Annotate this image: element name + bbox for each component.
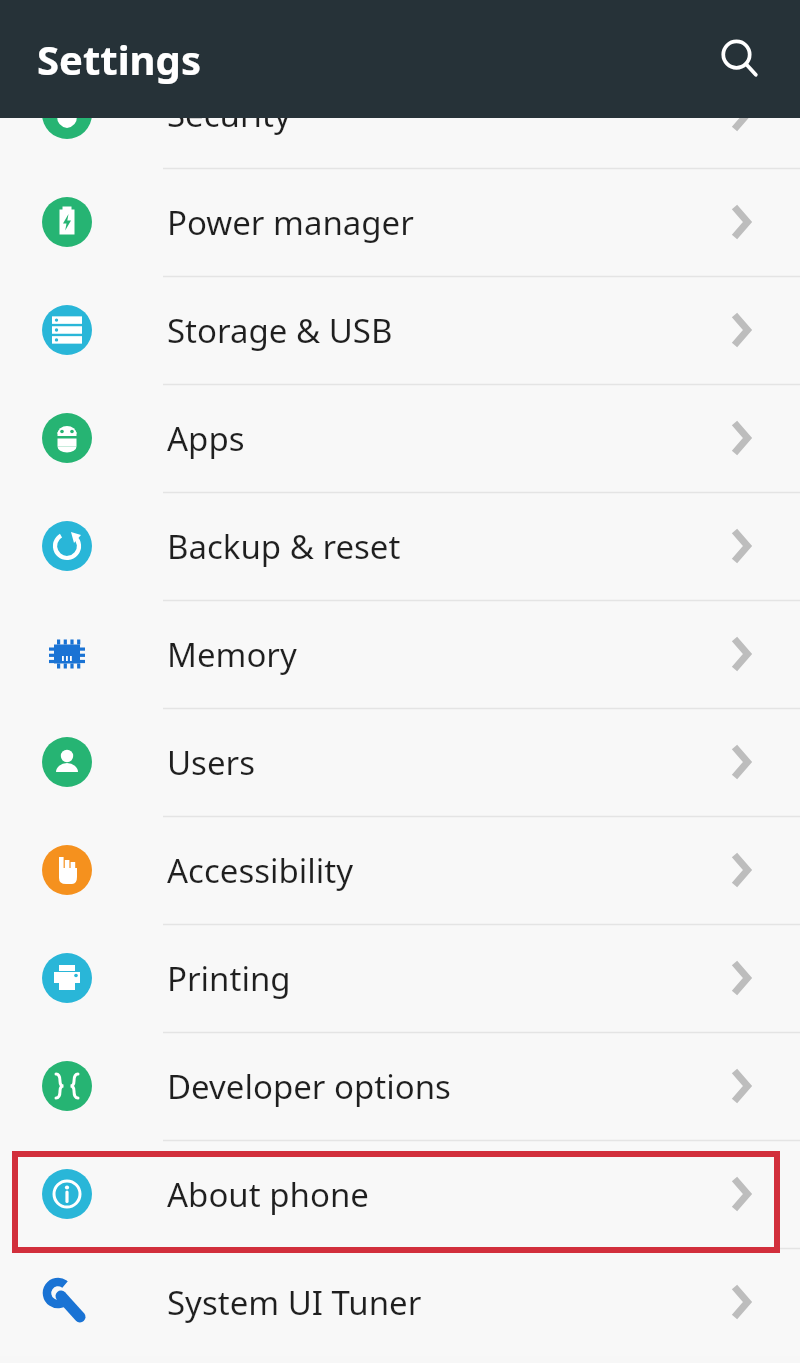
button[interactable]: Printing (0, 924, 800, 1032)
button[interactable]: Developer options (0, 1032, 800, 1140)
staticText: Accessibility (167, 848, 667, 893)
staticText: Developer options (167, 1064, 667, 1109)
staticText: Backup & reset (167, 524, 667, 569)
staticText: Storage & USB (167, 308, 667, 353)
button[interactable]: Backup & reset (0, 492, 800, 600)
staticText: Printing (167, 956, 667, 1001)
staticText: Apps (167, 416, 667, 461)
button[interactable]: System UI Tuner (0, 1248, 800, 1356)
staticText: Power manager (167, 200, 667, 245)
staticText: About phone (167, 1172, 667, 1217)
button[interactable]: About phone (0, 1140, 800, 1248)
button[interactable]: Security (0, 60, 800, 168)
button[interactable]: Power manager (0, 168, 800, 276)
staticText: Security (167, 92, 667, 137)
staticText: Settings (37, 32, 201, 86)
button[interactable]: Users (0, 708, 800, 816)
button[interactable]: Search (704, 23, 776, 95)
staticText: Memory (167, 632, 667, 677)
staticText: Users (167, 740, 667, 785)
button[interactable]: Storage & USB (0, 276, 800, 384)
button[interactable]: Accessibility (0, 816, 800, 924)
button[interactable]: Memory (0, 600, 800, 708)
staticText: System UI Tuner (167, 1280, 667, 1325)
button[interactable]: Apps (0, 384, 800, 492)
